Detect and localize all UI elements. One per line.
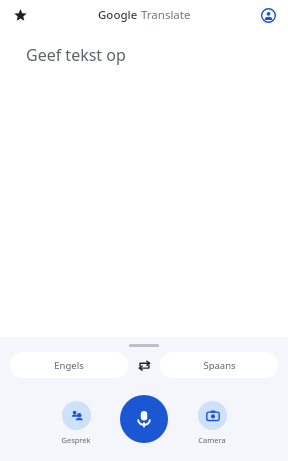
button[interactable]: Saved	[6, 1, 34, 29]
staticText: Spaans	[203, 359, 236, 372]
button[interactable]: Swap languages	[128, 351, 160, 379]
staticText: Translate	[141, 7, 191, 23]
staticText: Google	[98, 7, 138, 23]
staticText: Gesprek	[61, 435, 91, 445]
button[interactable]: Camera	[182, 393, 242, 445]
staticText: Engels	[54, 359, 84, 372]
staticText: Geef tekst op	[26, 44, 126, 66]
button[interactable]: Gesprek	[46, 393, 106, 445]
button[interactable]: Spaans	[160, 352, 278, 378]
button[interactable]: Speak	[120, 395, 168, 443]
button[interactable]: Account	[255, 2, 281, 28]
button[interactable]: Engels	[10, 352, 128, 378]
staticText: Camera	[198, 435, 226, 445]
